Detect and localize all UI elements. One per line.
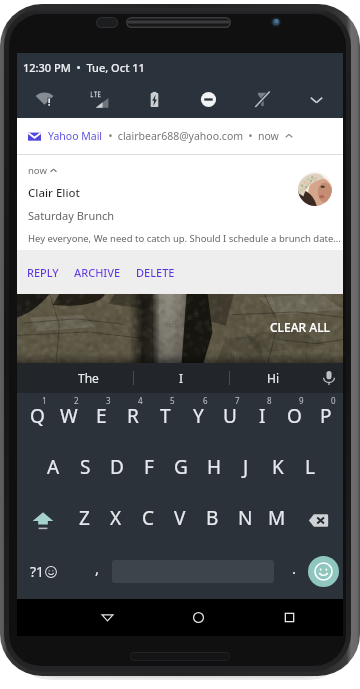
staticText: now [28,164,50,177]
button[interactable]: Voice input [315,363,343,393]
staticText: Clair Eliot [28,185,80,201]
button[interactable]: DELETE [136,259,175,286]
staticText: Saturday Brunch [28,208,115,223]
button[interactable]: CLEAR ALL [270,319,330,335]
button[interactable]: Battery saver [127,81,181,117]
staticText: J [243,454,249,480]
button[interactable]: X [100,495,132,546]
button[interactable]: Expand [289,81,343,117]
button[interactable]: J [230,444,262,495]
staticText: U [223,403,237,429]
staticText: I [179,370,184,386]
staticText: ?1 [30,562,45,581]
button[interactable]: N [229,495,261,546]
staticText: O [287,403,302,429]
staticText: 0 [331,395,336,406]
button[interactable]: G [165,444,197,495]
button[interactable]: R [117,393,149,444]
staticText: 3 [106,395,111,406]
staticText: V [174,505,186,531]
button[interactable]: Mobile data [72,81,127,117]
button[interactable]: , [77,546,117,596]
button[interactable]: ARCHIVE [74,259,121,286]
staticText: K [272,454,284,480]
button[interactable]: A [37,444,69,495]
button[interactable]: Y [182,393,214,444]
staticText: L [305,454,315,480]
staticText: 6 [203,395,208,406]
staticText: The [78,370,99,386]
button[interactable]: E [85,393,117,444]
button[interactable]: Emoji [303,546,343,596]
button[interactable]: Q [21,393,53,444]
button[interactable]: W [53,393,85,444]
staticText: 12:30 PM • Tue, Oct 11 [23,60,145,75]
staticText: 7 [235,395,240,406]
staticText: N [238,505,253,531]
button[interactable]: Recents [267,599,311,636]
button[interactable]: Flashlight [235,81,289,117]
staticText: I [259,403,266,429]
staticText: Q [30,403,45,429]
staticText: 5 [170,395,175,406]
staticText: Hey everyone, We need to catch up. Shoul… [28,232,341,245]
staticText: C [142,505,155,531]
staticText: 2 [74,395,79,406]
staticText: G [174,454,188,480]
staticText: P [320,403,332,429]
button[interactable]: Backspace [296,495,341,546]
staticText: Yahoo Mail [48,129,103,143]
button[interactable]: Wi-Fi [17,81,72,117]
staticText: 1 [42,395,47,406]
button[interactable]: Back [85,599,129,636]
button[interactable]: H [198,444,230,495]
staticText: A [47,454,60,480]
staticText: E [96,403,107,429]
staticText: , [95,558,100,578]
staticText: REPLY [27,265,59,280]
staticText: H [207,454,222,480]
button[interactable]: The [44,363,133,393]
staticText: • clairbear688@yahoo.com • now [103,129,285,143]
button[interactable]: Hi [230,363,315,393]
staticText: Z [79,505,90,531]
button[interactable]: T [149,393,181,444]
staticText: . [292,558,297,578]
button[interactable]: Do not disturb [181,81,235,117]
button[interactable]: . [274,546,314,596]
staticText: D [110,454,124,480]
button[interactable]: REPLY [27,259,59,286]
staticText: Hi [267,370,279,386]
staticText: F [144,454,154,480]
button[interactable]: Symbols [17,546,69,596]
button[interactable]: U [214,393,246,444]
button[interactable]: K [262,444,294,495]
button[interactable]: C [132,495,164,546]
button[interactable]: D [101,444,133,495]
button[interactable]: I [134,363,229,393]
button[interactable]: V [164,495,196,546]
button[interactable]: Shift [19,495,67,546]
staticText: DELETE [136,265,175,280]
staticText: R [127,403,139,429]
button[interactable]: I [246,393,278,444]
staticText: S [80,454,91,480]
button[interactable]: Home [176,599,220,636]
staticText: B [206,505,219,531]
button[interactable]: Space [112,546,274,596]
staticText: 9 [299,395,304,406]
button[interactable]: Z [68,495,100,546]
staticText: X [110,505,122,531]
button[interactable]: B [196,495,228,546]
staticText: Y [193,403,204,429]
button[interactable]: P [310,393,342,444]
button[interactable]: L [294,444,326,495]
staticText: 8 [267,395,272,406]
button[interactable]: S [69,444,101,495]
staticText: T [160,403,171,429]
button[interactable]: O [278,393,310,444]
button[interactable]: M [261,495,293,546]
staticText: M [268,505,286,531]
button[interactable]: Yahoo Mail [28,118,343,154]
button[interactable]: F [133,444,165,495]
